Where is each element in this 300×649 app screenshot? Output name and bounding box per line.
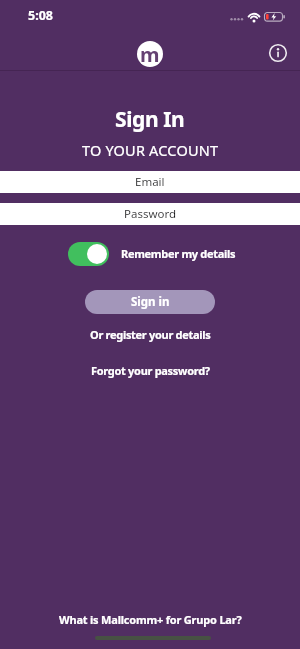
button[interactable]: Forgot your password? (91, 363, 210, 378)
button[interactable]: Email (0, 171, 300, 193)
staticText: Sign In (115, 105, 185, 134)
staticText: m (140, 41, 160, 67)
button[interactable] (68, 242, 109, 266)
staticText: TO YOUR ACCOUNT (82, 140, 219, 160)
button[interactable]: Sign in (85, 290, 215, 314)
staticText: Email (135, 174, 165, 190)
button[interactable]: Password (0, 203, 300, 225)
staticText: 5:08 (28, 7, 53, 24)
staticText: Password (124, 206, 177, 222)
button[interactable] (268, 43, 288, 63)
button[interactable]: What is Mallcomm+ for Grupo Lar? (59, 612, 242, 627)
button[interactable]: m (137, 41, 163, 67)
staticText: Remember my details (121, 246, 236, 261)
staticText: Sign in (131, 294, 170, 310)
button[interactable]: Or register your details (90, 327, 211, 342)
